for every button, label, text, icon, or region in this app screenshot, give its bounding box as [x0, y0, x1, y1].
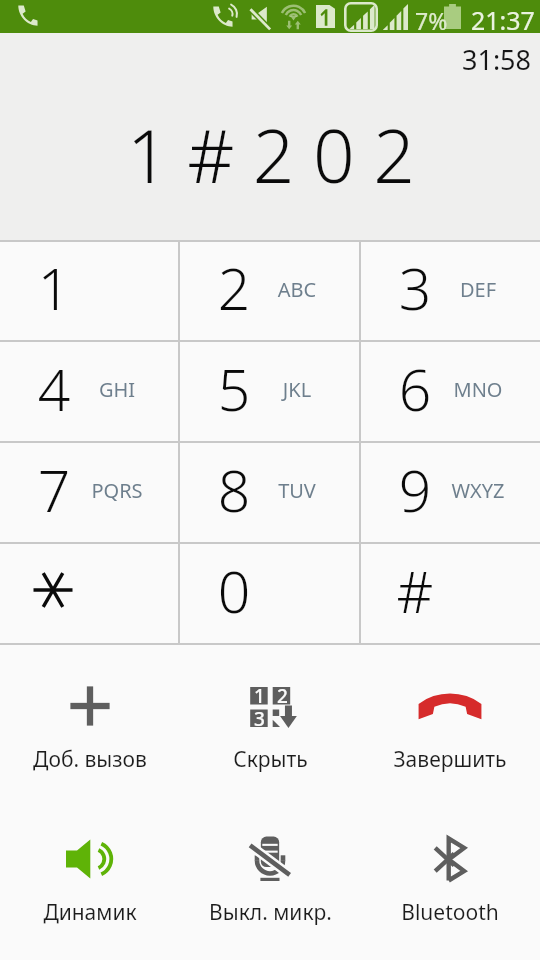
staticText: TUV — [257, 477, 337, 504]
staticText: 3 — [364, 249, 466, 327]
staticText: ABC — [257, 276, 337, 303]
staticText: Выкл. микр. — [209, 898, 332, 927]
button[interactable]: Скрыть — [180, 661, 360, 813]
staticText: 1 — [3, 249, 105, 327]
staticText: 7 — [3, 451, 105, 529]
staticText: 3 — [254, 706, 265, 732]
staticText: Bluetooth — [401, 898, 499, 927]
staticText: 21:37 — [471, 3, 535, 36]
staticText: 0 — [183, 552, 285, 630]
button[interactable]: Завершить — [360, 661, 540, 813]
staticText: MNO — [438, 376, 518, 403]
button[interactable]: 2 — [180, 242, 359, 340]
staticText: 31:58 — [462, 41, 532, 78]
button[interactable]: 1 — [0, 242, 178, 340]
staticText: Доб. вызов — [33, 745, 147, 774]
staticText: 1 — [254, 683, 265, 709]
staticText: DEF — [438, 276, 518, 303]
staticText: 8 — [183, 451, 285, 529]
staticText: # — [364, 552, 466, 630]
staticText: 6 — [364, 350, 466, 428]
button[interactable]: 6 — [361, 342, 540, 441]
button[interactable]: Bluetooth — [360, 814, 540, 960]
staticText: 9 — [364, 451, 466, 529]
staticText: Скрыть — [233, 745, 308, 774]
button[interactable]: 9 — [361, 443, 540, 542]
staticText: 2 — [183, 249, 285, 327]
button[interactable]: 5 — [180, 342, 359, 441]
button[interactable] — [0, 544, 178, 643]
staticText: 4 — [3, 350, 105, 428]
button[interactable]: 8 — [180, 443, 359, 542]
staticText: GHI — [77, 376, 157, 403]
staticText: 2 — [277, 683, 288, 709]
button[interactable]: 7 — [0, 443, 178, 542]
staticText: Динамик — [43, 898, 137, 927]
button[interactable]: Динамик — [0, 814, 180, 960]
button[interactable]: Доб. вызов — [0, 661, 180, 813]
staticText: 1#202 — [127, 105, 434, 204]
button[interactable]: 4 — [0, 342, 178, 441]
staticText: 7% — [415, 5, 448, 36]
staticText: PQRS — [77, 477, 157, 504]
button[interactable]: # — [361, 544, 540, 643]
staticText: Завершить — [393, 745, 507, 774]
staticText: JKL — [257, 376, 337, 403]
button[interactable]: 0 — [180, 544, 359, 643]
button[interactable]: 3 — [361, 242, 540, 340]
staticText: WXYZ — [438, 477, 518, 504]
staticText: 5 — [183, 350, 285, 428]
button[interactable]: Выкл. микр. — [180, 814, 360, 960]
